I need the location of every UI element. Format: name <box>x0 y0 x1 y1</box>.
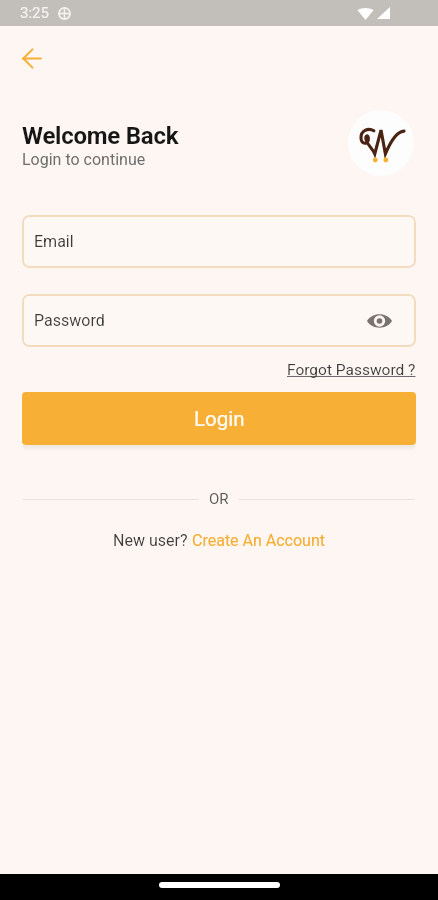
button[interactable]: Password <box>22 294 416 347</box>
staticText: Login to continue <box>22 150 146 169</box>
staticText: Login <box>194 407 245 431</box>
button[interactable]: Create An Account <box>192 531 326 550</box>
staticText: Forgot Password ? <box>287 361 416 379</box>
staticText: 3:25 <box>20 4 49 22</box>
button[interactable]: Show password <box>365 307 393 335</box>
button[interactable]: Email <box>22 215 416 268</box>
staticText: Password <box>34 311 105 330</box>
button[interactable]: Forgot Password ? <box>287 361 416 379</box>
staticText: Email <box>34 232 74 251</box>
button[interactable]: Back <box>12 39 51 78</box>
staticText: Welcome Back <box>22 122 179 150</box>
staticText: New user? <box>113 531 192 550</box>
button[interactable]: Login <box>22 392 416 445</box>
staticText: OR <box>209 490 229 508</box>
staticText: Create An Account <box>192 531 326 550</box>
